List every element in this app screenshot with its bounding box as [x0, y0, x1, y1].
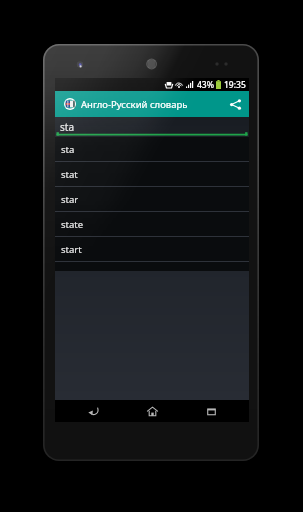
button[interactable]: Recent apps — [190, 400, 232, 422]
staticText: start — [61, 243, 82, 256]
staticText: 19:35 — [224, 79, 246, 91]
button[interactable]: state — [55, 212, 249, 237]
staticText: sta — [61, 143, 75, 156]
staticText: star — [61, 193, 79, 206]
staticText: Англо-Русский словарь — [81, 98, 188, 111]
button[interactable]: Share — [221, 91, 249, 117]
button[interactable]: stat — [55, 162, 249, 187]
button[interactable]: start — [55, 237, 249, 262]
button[interactable]: Back — [72, 400, 114, 422]
staticText: 43% — [197, 79, 214, 91]
button[interactable]: star — [55, 187, 249, 212]
staticText: stat — [61, 168, 78, 181]
staticText: state — [61, 218, 84, 231]
button[interactable]: sta — [55, 117, 249, 137]
staticText: sta — [60, 120, 75, 134]
button[interactable]: Home — [131, 400, 173, 422]
button[interactable]: sta — [55, 137, 249, 162]
